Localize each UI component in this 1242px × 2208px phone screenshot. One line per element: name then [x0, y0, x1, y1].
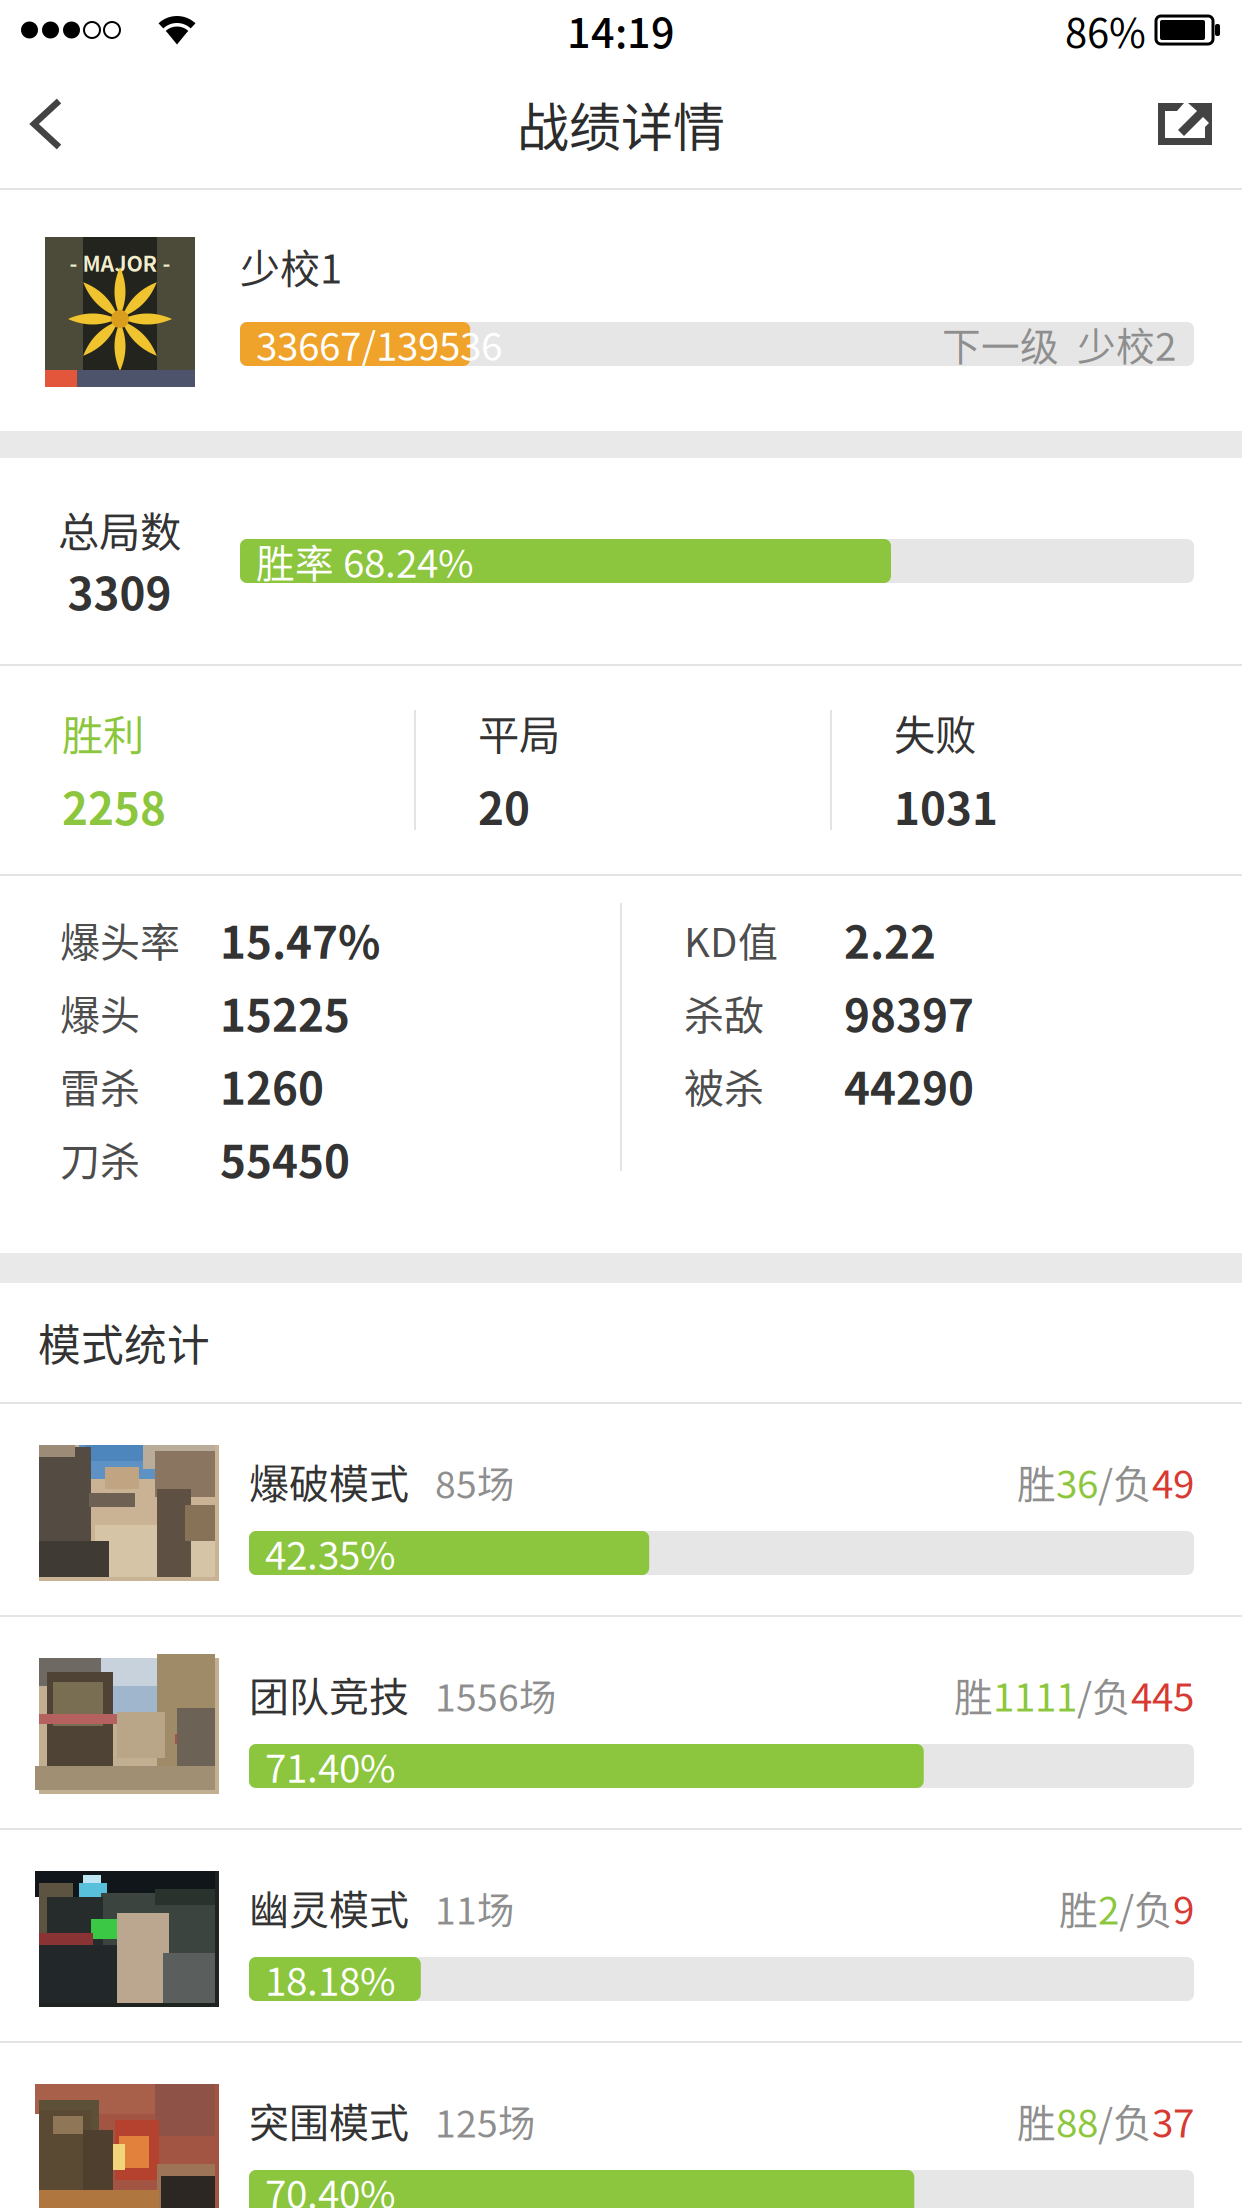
staticText: 2 [1098, 1880, 1119, 1936]
staticText: 总局数 [58, 499, 181, 559]
staticText: 55450 [220, 1127, 350, 1190]
button[interactable]: 团队竞技 [0, 1617, 1242, 1828]
staticText: 86% [1065, 1, 1146, 59]
staticText: 11场 [435, 1881, 514, 1935]
button[interactable]: 突围模式 [0, 2043, 1242, 2208]
staticText: 胜利 [62, 702, 144, 762]
staticText: 胜 [954, 1667, 993, 1723]
staticText: 负 [1113, 2093, 1152, 2149]
staticText: 1556场 [435, 1668, 556, 1722]
staticText: 杀敌 [684, 983, 764, 1041]
staticText: 少校1 [240, 237, 342, 295]
staticText: 71.40% [265, 1738, 396, 1794]
staticText: 负 [1134, 1880, 1173, 1936]
staticText: - MAJOR - [69, 247, 170, 278]
staticText: 失败 [894, 702, 976, 762]
staticText: 突围模式 [249, 2091, 409, 2149]
staticText: 胜 [1017, 2093, 1056, 2149]
staticText: 负 [1113, 1454, 1152, 1510]
staticText: 1031 [894, 774, 998, 838]
staticText: 刀杀 [60, 1129, 140, 1187]
staticText: 15.47% [220, 908, 380, 971]
staticText: 平局 [478, 702, 560, 762]
staticText: 36 [1056, 1454, 1098, 1510]
staticText: / [1119, 1880, 1134, 1936]
staticText: / [1098, 2093, 1113, 2149]
staticText: 49 [1152, 1454, 1194, 1510]
staticText: 爆头 [60, 983, 140, 1041]
staticText: 1111 [993, 1667, 1077, 1723]
staticText: 胜率 68.24% [256, 533, 474, 589]
staticText: 爆头率 [60, 910, 180, 968]
staticText: 445 [1131, 1667, 1194, 1723]
staticText: 战绩详情 [517, 86, 725, 162]
staticText: 37 [1152, 2093, 1194, 2149]
staticText: 2.22 [844, 908, 936, 971]
staticText: 18.18% [265, 1951, 396, 2007]
staticText: 70.40% [265, 2164, 396, 2208]
staticText: / [1077, 1667, 1092, 1723]
staticText: 幽灵模式 [249, 1878, 409, 1936]
staticText: 9 [1173, 1880, 1194, 1936]
staticText: 44290 [844, 1054, 974, 1117]
staticText: 下一级 少校2 [942, 316, 1176, 372]
staticText: 2258 [62, 774, 166, 838]
staticText: 88 [1056, 2093, 1098, 2149]
staticText: 85场 [435, 1455, 514, 1509]
staticText: 爆破模式 [249, 1452, 409, 1510]
staticText: 模式统计 [38, 1312, 210, 1373]
staticText: 33667/139536 [256, 316, 502, 372]
staticText: 20 [478, 774, 530, 838]
staticText: 负 [1092, 1667, 1131, 1723]
staticText: 胜 [1059, 1880, 1098, 1936]
staticText: 胜 [1017, 1454, 1056, 1510]
staticText: 1260 [220, 1054, 324, 1117]
staticText: 98397 [844, 981, 974, 1044]
staticText: 14:19 [567, 0, 675, 60]
staticText: KD值 [684, 910, 778, 968]
staticText: 被杀 [684, 1056, 764, 1114]
staticText: / [1098, 1454, 1113, 1510]
button[interactable]: 返回 [0, 60, 93, 188]
staticText: 42.35% [265, 1525, 396, 1581]
button[interactable]: 分享 [1128, 60, 1242, 188]
staticText: 15225 [220, 981, 350, 1044]
staticText: 125场 [435, 2094, 535, 2148]
staticText: 雷杀 [60, 1056, 140, 1114]
button[interactable]: 爆破模式 [0, 1404, 1242, 1615]
staticText: 团队竞技 [249, 1665, 409, 1723]
button[interactable]: 幽灵模式 [0, 1830, 1242, 2041]
staticText: 3309 [67, 559, 171, 623]
